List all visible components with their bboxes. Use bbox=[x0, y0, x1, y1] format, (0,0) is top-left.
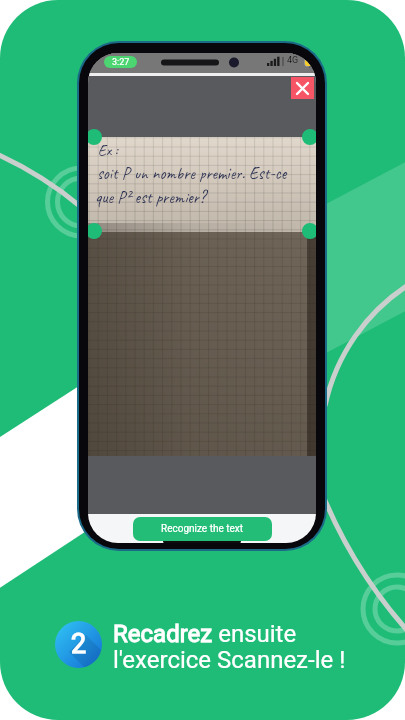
button[interactable]: Close bbox=[291, 77, 314, 99]
staticText: soit P un nombre premier. Est-ce bbox=[97, 163, 287, 184]
staticText: 2 bbox=[71, 628, 87, 660]
staticText: Ex : bbox=[98, 141, 118, 160]
staticText: Recadrez ensuite bbox=[113, 620, 297, 648]
staticText: 3:27 bbox=[112, 57, 130, 68]
staticText: 4G bbox=[287, 55, 299, 66]
button[interactable]: Step 2 bbox=[55, 621, 102, 668]
staticText: l'exercice Scannez-le ! bbox=[113, 646, 346, 674]
staticText: que P² est premier? bbox=[95, 187, 206, 208]
button[interactable]: Recognize the text bbox=[133, 517, 272, 541]
staticText: Recognize the text bbox=[161, 523, 244, 535]
